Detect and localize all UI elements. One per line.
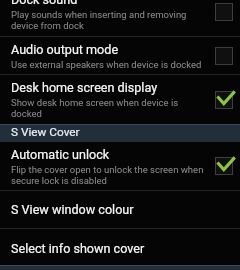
button[interactable]: Audio output mode: [0, 37, 240, 74]
button[interactable]: Desk home screen display: [0, 75, 240, 124]
staticText: S View window colour: [11, 202, 134, 217]
button[interactable]: Checked: [211, 155, 236, 177]
staticText: Automatic unlock: [11, 147, 110, 162]
button[interactable]: Checked: [211, 89, 236, 111]
button[interactable]: Unchecked: [211, 1, 236, 23]
staticText: S View Cover: [11, 125, 80, 139]
button[interactable]: Select info shown cover: [0, 229, 240, 265]
staticText: Play sounds when inserting and removing …: [11, 9, 206, 31]
staticText: Desk home screen display: [11, 80, 158, 95]
button[interactable]: Dock sound: [0, 0, 240, 36]
staticText: Use external speakers when device is doc…: [11, 59, 202, 70]
button[interactable]: Automatic unlock: [0, 142, 240, 190]
staticText: Select info shown cover: [11, 241, 145, 256]
staticText: Show desk home screen when device is doc…: [11, 97, 206, 119]
button[interactable]: S View window colour: [0, 191, 240, 228]
staticText: Flip the cover open to unlock the screen…: [11, 164, 206, 186]
button[interactable]: Unchecked: [211, 45, 236, 67]
staticText: Audio output mode: [11, 42, 119, 57]
staticText: Dock sound: [11, 0, 78, 7]
